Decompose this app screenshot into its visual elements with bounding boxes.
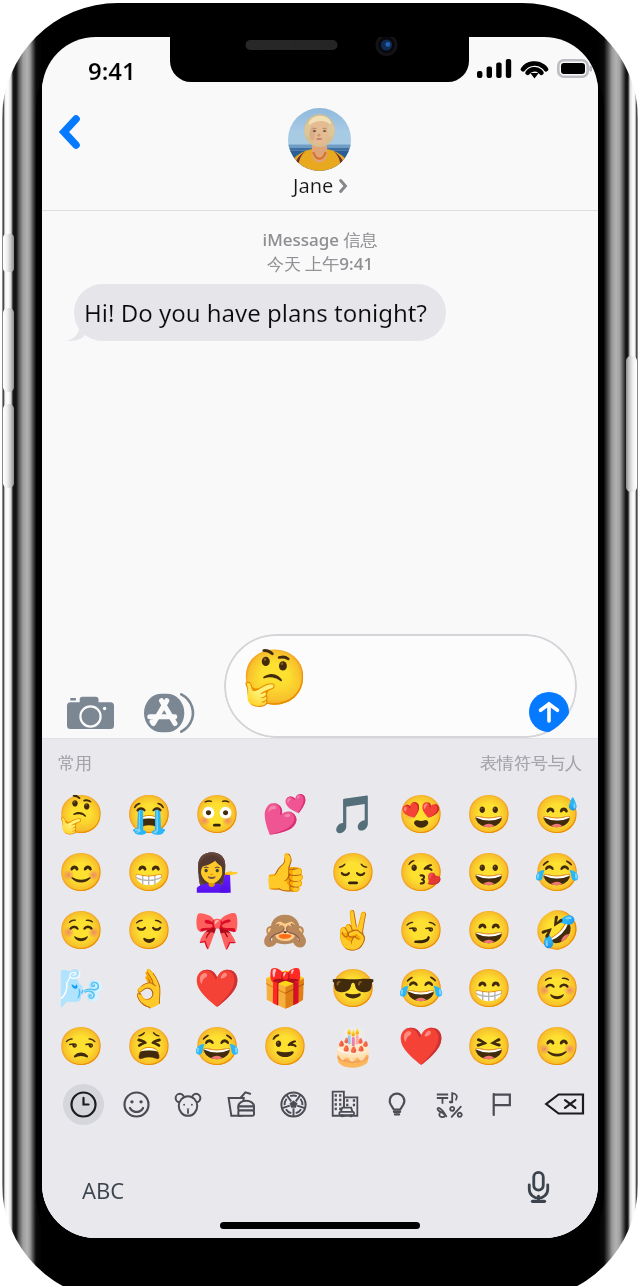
staticText: 😂: [534, 851, 581, 894]
button[interactable]: 😁: [460, 959, 518, 1017]
staticText: 😊: [534, 1025, 581, 1068]
staticText: 😌: [126, 909, 173, 952]
button[interactable]: 😫: [120, 1017, 178, 1075]
staticText: 😁: [126, 851, 173, 894]
staticText: ❤️: [398, 1025, 445, 1068]
button[interactable]: ☺️: [528, 959, 586, 1017]
button[interactable]: 😁: [120, 843, 178, 901]
button[interactable]: 😏: [392, 901, 450, 959]
button[interactable]: Smileys and people: [110, 1075, 162, 1133]
button[interactable]: Jane: [288, 108, 351, 199]
staticText: 常用: [58, 753, 92, 774]
button[interactable]: 😳: [188, 785, 246, 843]
staticText: ✌️: [330, 909, 377, 952]
button[interactable]: 😆: [460, 1017, 518, 1075]
button[interactable]: App Store: [139, 684, 197, 742]
button[interactable]: ☺️: [52, 901, 110, 959]
button[interactable]: 😀: [460, 785, 518, 843]
button[interactable]: ABC: [82, 1175, 125, 1205]
button[interactable]: 🙈: [256, 901, 314, 959]
staticText: 😒: [58, 1025, 105, 1068]
staticText: Hi! Do you have plans tonight?: [84, 296, 427, 329]
staticText: 😀: [466, 793, 513, 836]
staticText: 👌: [126, 967, 173, 1010]
staticText: 🤣: [534, 909, 581, 952]
button[interactable]: Delete: [539, 1075, 591, 1133]
button[interactable]: ✌️: [324, 901, 382, 959]
button[interactable]: Animals and nature: [162, 1075, 214, 1133]
staticText: iMessage 信息: [42, 228, 598, 251]
button[interactable]: 🌬️: [52, 959, 110, 1017]
button[interactable]: Activity: [267, 1075, 319, 1133]
staticText: ☺️: [534, 967, 581, 1010]
button[interactable]: 😊: [52, 843, 110, 901]
button[interactable]: 🤔: [52, 785, 110, 843]
staticText: 🤔: [241, 646, 309, 709]
staticText: 😔: [330, 851, 377, 894]
button[interactable]: 👍: [256, 843, 314, 901]
button[interactable]: 😔: [324, 843, 382, 901]
staticText: 😊: [58, 851, 105, 894]
button[interactable]: 😂: [392, 959, 450, 1017]
button[interactable]: 😅: [528, 785, 586, 843]
button[interactable]: 💕: [256, 785, 314, 843]
button[interactable]: 😄: [460, 901, 518, 959]
staticText: 表情符号与人: [480, 753, 582, 774]
button[interactable]: Recently used: [57, 1075, 109, 1133]
button[interactable]: 😒: [52, 1017, 110, 1075]
button[interactable]: 😌: [120, 901, 178, 959]
button[interactable]: 😭: [120, 785, 178, 843]
staticText: ❤️: [194, 967, 241, 1010]
button[interactable]: 😀: [460, 843, 518, 901]
button[interactable]: 👌: [120, 959, 178, 1017]
button[interactable]: 💁‍♀️: [188, 843, 246, 901]
staticText: 🙈: [262, 909, 309, 952]
button[interactable]: ❤️: [188, 959, 246, 1017]
staticText: 😭: [126, 793, 173, 836]
button[interactable]: 😍: [392, 785, 450, 843]
staticText: 👍: [262, 851, 309, 894]
button[interactable]: Camera: [55, 684, 126, 741]
staticText: 😫: [126, 1025, 173, 1068]
staticText: 😁: [466, 967, 513, 1010]
staticText: 😉: [262, 1025, 309, 1068]
staticText: 🎂: [330, 1025, 377, 1068]
button[interactable]: Flags: [475, 1075, 527, 1133]
button[interactable]: 😊: [528, 1017, 586, 1075]
staticText: 💕: [262, 793, 309, 836]
button[interactable]: Food and drink: [214, 1075, 266, 1133]
button[interactable]: Objects: [371, 1075, 423, 1133]
staticText: 😎: [330, 967, 377, 1010]
staticText: 😂: [194, 1025, 241, 1068]
staticText: 😅: [534, 793, 581, 836]
button[interactable]: 🎀: [188, 901, 246, 959]
staticText: 😀: [466, 851, 513, 894]
button[interactable]: ❤️: [392, 1017, 450, 1075]
staticText: 🎀: [194, 909, 241, 952]
button[interactable]: Travel and places: [319, 1075, 371, 1133]
button[interactable]: 😘: [392, 843, 450, 901]
button[interactable]: 😂: [528, 843, 586, 901]
staticText: 😄: [466, 909, 513, 952]
staticText: 🌬️: [58, 967, 105, 1010]
staticText: 😏: [398, 909, 445, 952]
button[interactable]: 😂: [188, 1017, 246, 1075]
staticText: ☺️: [58, 909, 105, 952]
button[interactable]: 😎: [324, 959, 382, 1017]
button[interactable]: Symbols: [423, 1075, 475, 1133]
button[interactable]: 😉: [256, 1017, 314, 1075]
staticText: 💁‍♀️: [194, 851, 241, 894]
staticText: 🎁: [262, 967, 309, 1010]
button[interactable]: 🎁: [256, 959, 314, 1017]
button[interactable]: Send: [529, 692, 569, 732]
staticText: 😂: [398, 967, 445, 1010]
button[interactable]: 🤣: [528, 901, 586, 959]
button[interactable]: 🤔: [224, 634, 577, 738]
button[interactable]: Back: [46, 108, 94, 156]
staticText: 🎵: [330, 793, 377, 836]
staticText: 9:41: [88, 54, 136, 87]
staticText: 今天 上午9:41: [42, 252, 598, 275]
button[interactable]: Dictation: [516, 1165, 560, 1209]
button[interactable]: 🎵: [324, 785, 382, 843]
button[interactable]: 🎂: [324, 1017, 382, 1075]
